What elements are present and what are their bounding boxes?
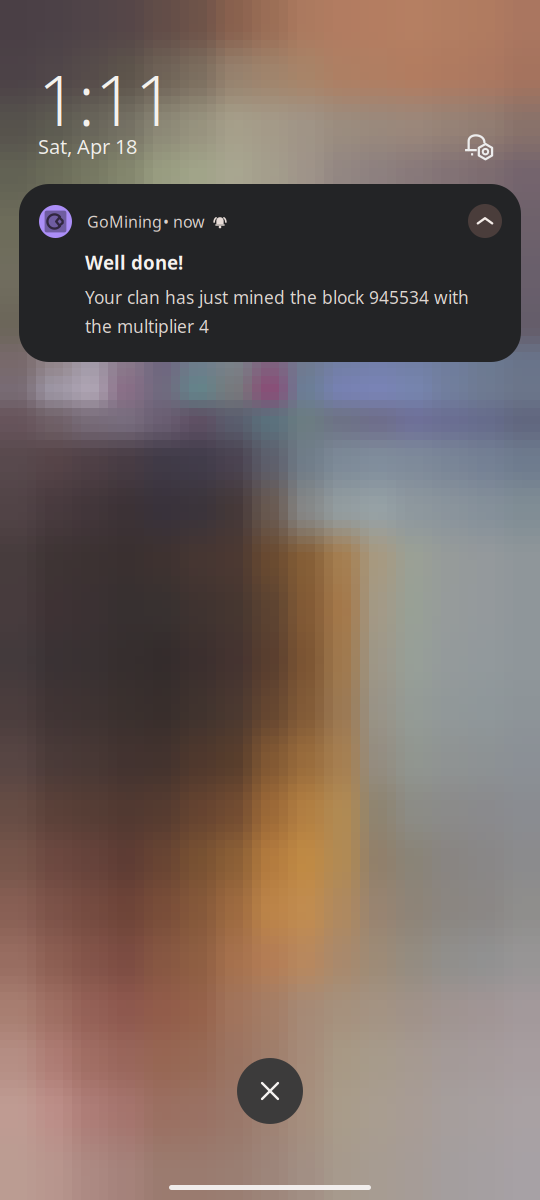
staticText: 1:11: [38, 53, 175, 145]
staticText: Your clan has just mined the block 94553…: [85, 286, 469, 309]
button[interactable]: Dismiss all notifications: [237, 1058, 303, 1124]
staticText: the multiplier 4: [85, 315, 209, 338]
staticText: •: [163, 211, 169, 232]
staticText: Well done!: [85, 250, 183, 275]
staticText: GoMining: [87, 211, 162, 232]
staticText: now: [173, 211, 205, 232]
staticText: Sat, Apr 18: [38, 133, 137, 160]
button[interactable]: Expand notification: [468, 204, 502, 238]
button[interactable]: Notification settings: [457, 125, 501, 169]
